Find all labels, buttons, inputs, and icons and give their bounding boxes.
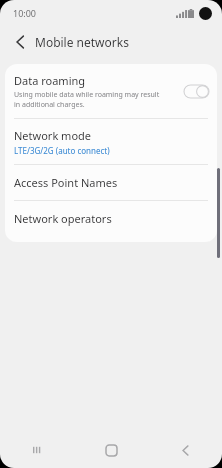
button[interactable]: Network mode: [5, 119, 217, 164]
button[interactable]: Access Point Names: [5, 165, 217, 200]
staticText: Using mobile data while roaming may resu…: [14, 90, 160, 100]
button[interactable]: Back: [148, 432, 222, 468]
button[interactable]: Network operators: [5, 201, 217, 236]
staticText: Mobile networks: [35, 34, 129, 50]
staticText: in additional charges.: [14, 100, 85, 110]
button[interactable]: Back: [9, 31, 31, 53]
staticText: Network operators: [14, 211, 112, 226]
staticText: LTE/3G/2G (auto connect): [14, 145, 110, 156]
button[interactable]: Recent apps: [0, 432, 74, 468]
staticText: 10:00: [13, 7, 37, 19]
staticText: Data roaming: [14, 73, 86, 88]
button[interactable]: Data roaming: [5, 64, 217, 118]
staticText: Access Point Names: [14, 175, 118, 190]
button[interactable]: Data roaming toggle: [183, 84, 209, 99]
staticText: Network mode: [14, 128, 92, 143]
button[interactable]: Home: [74, 432, 148, 468]
